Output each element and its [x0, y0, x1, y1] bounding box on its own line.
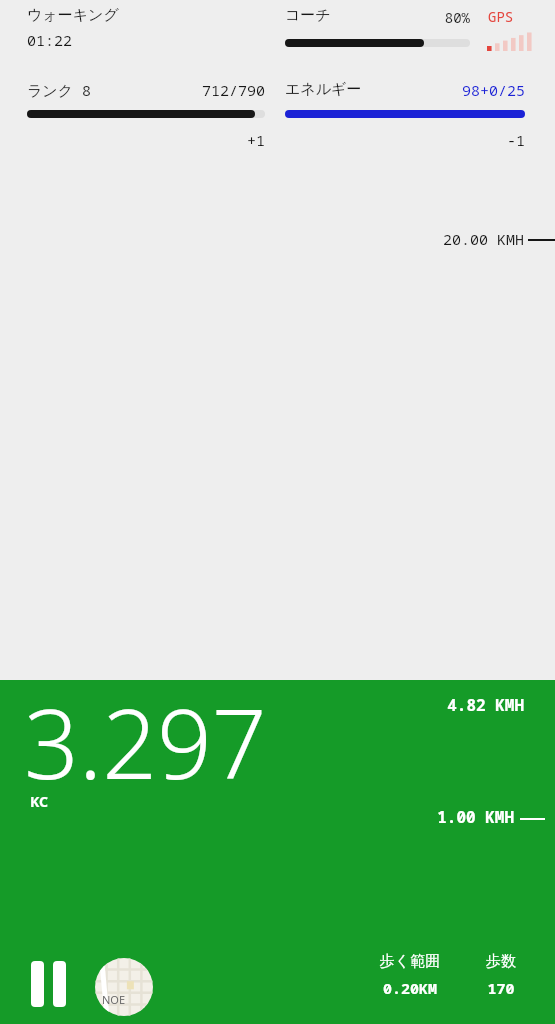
button[interactable]: 歩数 — [464, 952, 538, 1008]
staticText: コーチ — [285, 6, 331, 25]
staticText: 01:22 — [27, 30, 73, 50]
button[interactable]: Pause — [18, 955, 80, 1013]
staticText: 歩く範囲 — [368, 952, 452, 978]
staticText: -1 — [0, 130, 525, 154]
button[interactable]: GPS signal — [484, 4, 550, 54]
staticText: 80% — [0, 8, 470, 30]
staticText: +1 — [0, 130, 265, 154]
staticText: 1.00 KMH — [0, 806, 514, 834]
staticText: 20.00 KMH — [0, 229, 524, 253]
staticText: エネルギー — [285, 80, 362, 99]
staticText: 0.20KM — [368, 978, 452, 1004]
staticText: ウォーキング — [27, 6, 119, 25]
staticText: GPS — [488, 7, 514, 26]
staticText: 3.297 — [24, 676, 267, 807]
staticText: 歩数 — [464, 952, 538, 978]
staticText: NOE — [102, 992, 126, 1007]
staticText: 4.82 KMH — [0, 694, 524, 722]
button[interactable]: Map — [95, 958, 153, 1016]
staticText: ランク 8 — [27, 80, 92, 100]
staticText: 98+0/25 — [0, 80, 525, 104]
staticText: 170 — [464, 978, 538, 1004]
button[interactable]: 歩く範囲 — [368, 952, 452, 1008]
staticText: 712/790 — [0, 80, 265, 104]
staticText: KC — [30, 792, 49, 811]
